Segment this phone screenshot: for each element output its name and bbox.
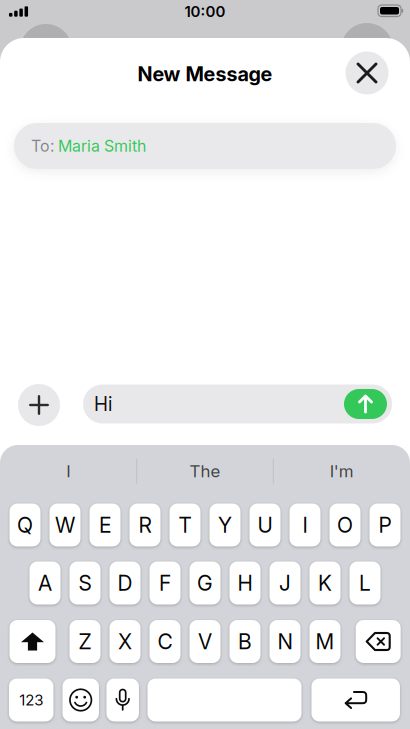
staticText: Q [17,513,33,537]
button[interactable]: Add attachment [18,384,60,426]
staticText: T [178,513,191,537]
button[interactable]: A [29,561,60,604]
button[interactable]: Dictation [106,678,139,721]
staticText: J [279,571,291,595]
button[interactable]: E [89,503,120,546]
button[interactable]: I'm [282,454,402,488]
button[interactable]: O [329,503,360,546]
staticText: H [237,571,252,595]
staticText: The [189,461,220,481]
staticText: Y [218,513,232,537]
staticText: M [315,629,334,654]
button[interactable]: W [49,503,80,546]
button[interactable]: Space [147,678,301,721]
staticText: G [197,571,213,595]
staticText: 10:00 [184,3,225,20]
button[interactable]: F [149,561,180,604]
button[interactable]: U [249,503,280,546]
button[interactable]: H [229,561,260,604]
button[interactable]: Send [344,389,387,419]
button[interactable]: B [229,620,260,663]
staticText: C [157,629,172,654]
button[interactable]: P [369,503,400,546]
staticText: W [55,513,75,537]
button[interactable]: M [309,620,340,663]
staticText: B [238,629,252,654]
staticText: A [38,571,52,595]
button[interactable]: To: [14,123,396,169]
button[interactable]: Numbers [9,678,53,721]
staticText: S [78,571,91,595]
staticText: K [318,571,332,595]
staticText: P [378,513,391,537]
button[interactable]: Y [209,503,240,546]
staticText: New Message [137,62,272,86]
staticText: V [198,629,212,654]
staticText: To: [31,137,54,155]
staticText: N [277,629,292,654]
staticText: 123 [19,691,43,709]
staticText: D [117,571,132,595]
staticText: Maria Smith [58,137,146,155]
button[interactable]: Z [69,620,100,663]
button[interactable]: Delete [356,620,401,663]
staticText: O [337,513,353,537]
button[interactable]: R [129,503,160,546]
staticText: L [359,571,371,595]
staticText: F [159,571,171,595]
staticText: R [138,513,151,537]
staticText: X [118,629,132,654]
button[interactable]: K [309,561,340,604]
button[interactable]: J [269,561,300,604]
button[interactable]: N [269,620,300,663]
staticText: I'm [330,461,354,481]
button[interactable]: V [189,620,220,663]
button[interactable]: D [109,561,140,604]
button[interactable]: C [149,620,180,663]
button[interactable]: The [145,454,265,488]
button[interactable]: Close [345,51,388,94]
button[interactable]: X [109,620,140,663]
button[interactable]: I [289,503,320,546]
button[interactable]: T [169,503,200,546]
button[interactable]: Q [9,503,40,546]
staticText: I [66,461,70,481]
button[interactable]: Emoji [62,678,99,721]
staticText: Hi [94,393,112,415]
staticText: E [99,513,111,537]
button[interactable]: Shift [9,620,55,663]
button[interactable]: S [69,561,100,604]
button[interactable]: Return [311,678,400,721]
staticText: U [257,513,272,537]
staticText: I [302,513,307,537]
button[interactable]: G [189,561,220,604]
staticText: Z [78,629,91,654]
button[interactable]: L [349,561,380,604]
button[interactable]: I [8,454,128,488]
